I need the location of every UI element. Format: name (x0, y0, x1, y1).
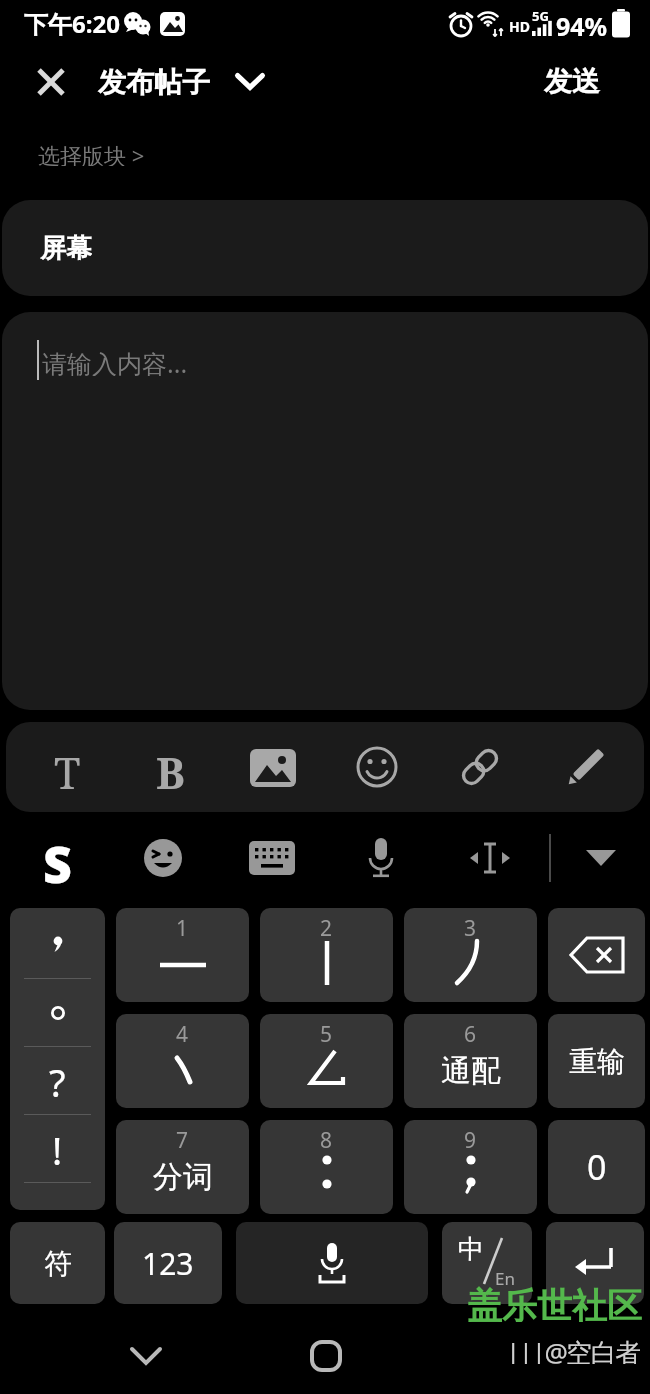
button[interactable] (468, 840, 512, 876)
button[interactable]: 123 (114, 1222, 222, 1304)
button[interactable] (562, 745, 608, 791)
staticText: 选择版块 > (38, 140, 145, 166)
button[interactable]: B (148, 743, 192, 793)
staticText: 94% (556, 9, 608, 39)
button[interactable] (115, 1330, 177, 1380)
button[interactable]: 9 (404, 1120, 537, 1214)
staticText: 123 (142, 1243, 194, 1284)
button[interactable] (249, 841, 295, 875)
staticText: 符 (44, 1246, 72, 1281)
button[interactable]: 6 (404, 1014, 537, 1108)
button[interactable]: 选择版块 > (38, 140, 198, 166)
button[interactable]: 7 (116, 1120, 249, 1214)
button[interactable] (2, 312, 648, 710)
staticText: 通配 (441, 1052, 501, 1090)
staticText: 6 (464, 1020, 477, 1049)
button[interactable]: 2 (260, 908, 393, 1002)
staticText: 中 (458, 1233, 484, 1266)
staticText: 2 (320, 914, 333, 943)
button[interactable] (2, 200, 648, 296)
button[interactable] (548, 908, 645, 1002)
button[interactable]: 1 (116, 908, 249, 1002)
button[interactable] (356, 746, 398, 788)
button[interactable]: S (30, 830, 84, 886)
button[interactable] (10, 908, 105, 1210)
staticText: 屏幕 (40, 232, 92, 264)
button[interactable]: 0 (548, 1120, 645, 1214)
staticText: 重输 (569, 1044, 625, 1079)
staticText: 下午6:20 (24, 7, 120, 39)
staticText: 9 (464, 1126, 477, 1155)
staticText: S (43, 830, 72, 886)
button[interactable] (366, 837, 396, 879)
staticText: B (156, 743, 185, 793)
button[interactable] (310, 1340, 342, 1372)
button[interactable]: 中 (442, 1222, 532, 1304)
staticText: T (54, 743, 81, 793)
staticText: 发布帖子 (98, 65, 210, 100)
button[interactable]: 发布帖子 (98, 64, 226, 100)
staticText: En (495, 1267, 515, 1290)
button[interactable] (546, 1222, 644, 1304)
staticText: 盖乐世社区 (467, 1284, 642, 1322)
button[interactable]: 重输 (548, 1014, 645, 1108)
staticText: |||@空白者 (506, 1334, 640, 1364)
button[interactable] (34, 65, 68, 99)
button[interactable]: T (45, 743, 89, 793)
button[interactable]: 4 (116, 1014, 249, 1108)
button[interactable]: 5 (260, 1014, 393, 1108)
staticText: 5G (532, 7, 549, 21)
button[interactable] (458, 745, 502, 789)
staticText: 0 (587, 1144, 607, 1190)
button[interactable] (236, 1222, 428, 1304)
button[interactable]: 符 (10, 1222, 105, 1304)
staticText: 4 (176, 1020, 189, 1049)
staticText: 分词 (153, 1158, 213, 1196)
button[interactable]: 3 (404, 908, 537, 1002)
staticText: HD (509, 17, 530, 33)
button[interactable]: 发送 (530, 63, 600, 99)
staticText: 7 (176, 1126, 189, 1155)
button[interactable]: 8 (260, 1120, 393, 1214)
staticText: 8 (320, 1126, 333, 1155)
staticText: ? (49, 1056, 66, 1106)
staticText: 发送 (544, 64, 600, 99)
button[interactable] (586, 850, 616, 868)
button[interactable] (143, 838, 183, 878)
button[interactable] (250, 749, 296, 787)
staticText: 3 (464, 914, 477, 943)
staticText: 1 (176, 914, 189, 943)
staticText: 5 (320, 1020, 333, 1049)
staticText: ! (52, 1124, 63, 1174)
staticText: 请输入内容... (42, 346, 188, 376)
